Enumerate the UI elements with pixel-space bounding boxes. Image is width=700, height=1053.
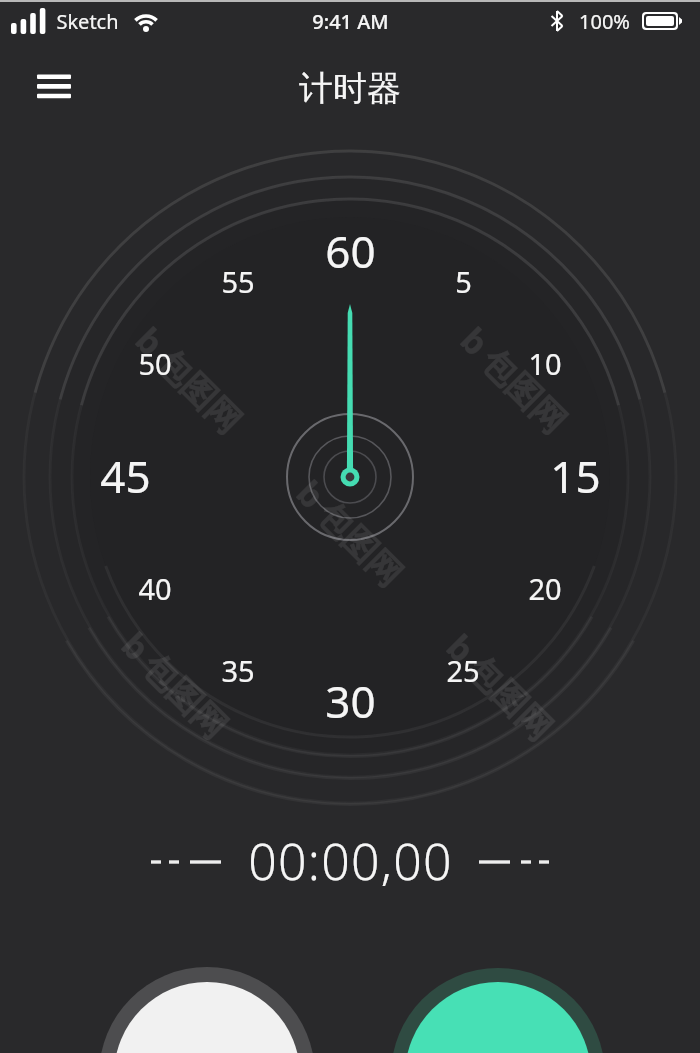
staticText: 35 [221, 651, 255, 690]
staticText: Sketch [56, 8, 119, 35]
button[interactable] [99, 967, 315, 1053]
staticText: b 包图网 [287, 470, 414, 597]
staticText: 5 [455, 262, 472, 301]
staticText: b 包图网 [437, 624, 564, 751]
staticText: 100% [579, 8, 630, 35]
staticText: 60 [325, 221, 376, 281]
staticText: b 包图网 [112, 622, 239, 749]
staticText: 15 [550, 446, 601, 506]
staticText: 9:41 AM [312, 8, 389, 35]
staticText: 00:00,00 [248, 827, 453, 895]
staticText: 20 [528, 569, 562, 608]
staticText: 45 [100, 446, 151, 506]
button[interactable] [391, 968, 605, 1053]
staticText: 10 [528, 344, 562, 383]
button[interactable] [27, 64, 81, 108]
staticText: 50 [138, 344, 172, 383]
staticText: 计时器 [299, 67, 401, 110]
staticText: 40 [138, 569, 172, 608]
staticText: 30 [325, 671, 376, 731]
staticText: 25 [446, 651, 480, 690]
staticText: b 包图网 [451, 317, 578, 444]
staticText: 55 [221, 262, 255, 301]
staticText: b 包图网 [126, 317, 253, 444]
